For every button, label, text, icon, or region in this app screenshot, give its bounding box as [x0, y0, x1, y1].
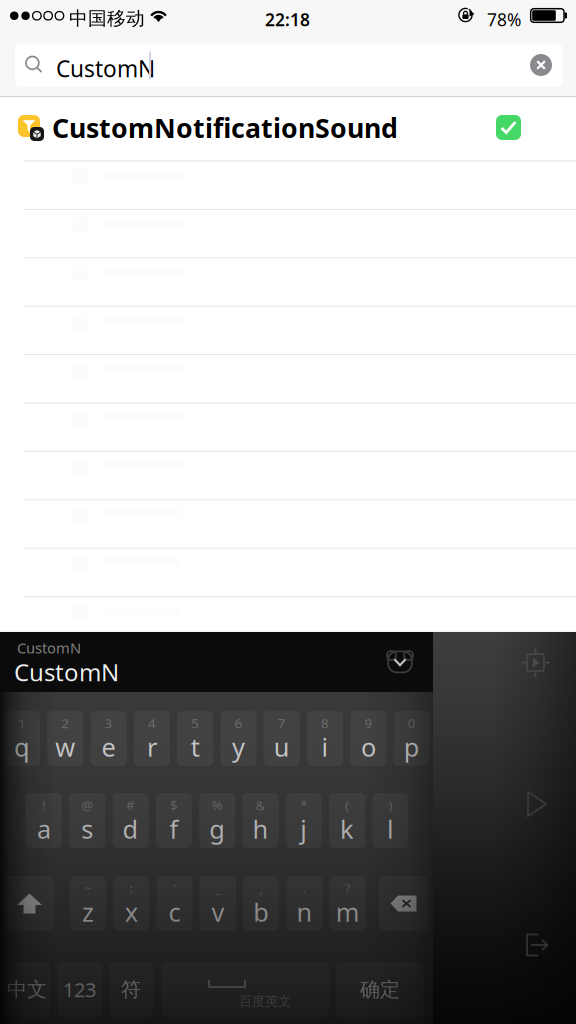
button[interactable]: Clear search text [523, 43, 559, 86]
button[interactable]: . [286, 876, 322, 931]
staticText: & [255, 796, 265, 814]
button[interactable]: & [242, 793, 278, 848]
button[interactable]: $ [156, 793, 192, 848]
button[interactable]: 0 [394, 711, 430, 766]
staticText: 6 [234, 714, 242, 732]
staticText: ( [345, 796, 349, 814]
staticText: 确定 [360, 977, 400, 1002]
staticText: h [252, 812, 268, 846]
button[interactable]: ( [329, 793, 365, 848]
staticText: u [274, 730, 290, 764]
button[interactable]: Backspace [379, 876, 428, 931]
button[interactable]: ~ [70, 876, 106, 931]
staticText: 0 [408, 714, 416, 732]
button[interactable]: 5 [177, 711, 213, 766]
staticText: . [302, 879, 306, 897]
staticText: q [14, 730, 30, 764]
button[interactable]: Space [161, 962, 329, 1017]
button[interactable]: 符 [109, 962, 153, 1017]
button[interactable]: * [286, 793, 322, 848]
button[interactable]: 8 [307, 711, 343, 766]
button[interactable]: Shift [5, 876, 54, 931]
staticText: 9 [364, 714, 372, 732]
staticText: % [212, 796, 223, 814]
staticText: : [129, 879, 133, 897]
button[interactable]: _ [200, 876, 236, 931]
staticText: CustomN [56, 53, 155, 84]
staticText: 中国移动 [69, 7, 145, 30]
staticText: x [125, 895, 138, 929]
button[interactable]: Play [522, 790, 552, 818]
staticText: r [147, 730, 157, 764]
staticText: $ [170, 796, 178, 814]
button[interactable]: , [243, 876, 279, 931]
button[interactable]: 1 [4, 711, 40, 766]
staticText: 4 [148, 714, 156, 732]
staticText: @ [81, 796, 93, 814]
staticText: 123 [63, 976, 96, 1003]
button[interactable]: 确定 [336, 962, 424, 1017]
staticText: k [340, 812, 354, 846]
button[interactable]: 7 [264, 711, 300, 766]
staticText: w [55, 730, 75, 764]
button[interactable]: Hide keyboard [521, 932, 552, 958]
staticText: * [300, 796, 307, 814]
staticText: v [211, 895, 224, 929]
staticText: n [296, 895, 312, 929]
staticText: f [169, 812, 178, 846]
button[interactable]: 2 [47, 711, 83, 766]
staticText: 8 [321, 714, 329, 732]
staticText: a [37, 812, 51, 846]
button[interactable]: CustomNotificationSound [0, 97, 576, 160]
button[interactable]: : [113, 876, 149, 931]
button[interactable]: ! [26, 793, 62, 848]
staticText: 78% [487, 8, 521, 31]
button[interactable]: % [199, 793, 235, 848]
button[interactable]: 3 [91, 711, 127, 766]
button[interactable]: Show more candidates [386, 649, 414, 675]
staticText: 5 [191, 714, 199, 732]
staticText: s [81, 812, 93, 846]
staticText: j [300, 812, 307, 846]
button[interactable]: @ [69, 793, 105, 848]
staticText: ~ [84, 879, 92, 897]
staticText: CustomNotificationSound [52, 110, 398, 145]
staticText: ! [42, 796, 46, 814]
staticText: ? [345, 879, 351, 897]
staticText: CustomN [17, 638, 81, 657]
button[interactable]: 4 [134, 711, 170, 766]
staticText: t [191, 730, 200, 764]
staticText: d [123, 812, 139, 846]
button[interactable]: # [113, 793, 149, 848]
staticText: 2 [61, 714, 69, 732]
button[interactable]: 9 [350, 711, 386, 766]
button[interactable]: 中文 [4, 962, 50, 1017]
staticText: 22:18 [265, 8, 310, 31]
staticText: ) [388, 796, 392, 814]
staticText: p [404, 730, 420, 764]
staticText: y [232, 730, 245, 764]
button[interactable]: ) [372, 793, 408, 848]
button[interactable]: Move keyboard [520, 647, 551, 678]
staticText: , [259, 879, 263, 897]
staticText: b [253, 895, 269, 929]
staticText: 1 [18, 714, 26, 732]
staticText: 7 [278, 714, 286, 732]
staticText: m [336, 895, 360, 929]
staticText: e [102, 730, 116, 764]
staticText: l [387, 812, 394, 846]
staticText: c [169, 895, 181, 929]
staticText: o [361, 730, 376, 764]
staticText: g [209, 812, 225, 846]
staticText: ' [173, 879, 176, 897]
staticText: CustomN [14, 656, 119, 688]
button[interactable]: 6 [220, 711, 256, 766]
staticText: 百度英文 [239, 993, 291, 1009]
staticText: 3 [105, 714, 113, 732]
button[interactable]: ? [330, 876, 366, 931]
button[interactable]: 123 [57, 962, 102, 1017]
staticText: z [82, 895, 94, 929]
staticText: # [126, 796, 135, 814]
button[interactable]: ' [157, 876, 193, 931]
staticText: 中文 [7, 977, 47, 1002]
